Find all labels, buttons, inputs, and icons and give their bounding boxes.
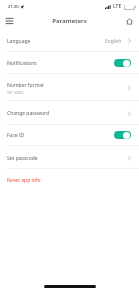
button[interactable]: Set passcode <box>0 147 139 169</box>
staticText: Number format <box>7 82 44 89</box>
staticText: Face ID <box>7 132 25 139</box>
staticText: Reset app info <box>7 177 41 184</box>
staticText: 161 123.02 <box>7 91 24 95</box>
button[interactable]: Face ID <box>0 124 139 146</box>
button[interactable]: Reset app info <box>0 169 139 191</box>
button[interactable]: Change password <box>0 102 139 125</box>
staticText: Notifications <box>7 60 37 67</box>
staticText: Change password <box>7 110 50 117</box>
staticText: LTE <box>113 3 122 10</box>
button[interactable]: Number format <box>0 74 139 101</box>
staticText: Parameters <box>52 16 87 24</box>
button[interactable]: Menu <box>2 14 16 28</box>
button[interactable]: Home <box>122 14 136 28</box>
staticText: 21:20 <box>8 4 19 10</box>
staticText: Set passcode <box>7 155 38 162</box>
button[interactable]: Notifications <box>0 52 139 74</box>
staticText: Language <box>7 38 31 45</box>
staticText: English <box>105 38 122 45</box>
button[interactable]: Language <box>0 30 139 52</box>
